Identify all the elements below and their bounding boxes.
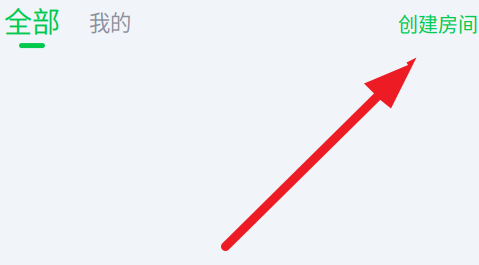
staticText: 创建房间 [398,9,478,38]
staticText: 全部 [4,0,60,40]
button[interactable]: 我的 [85,6,135,37]
button[interactable]: 全部 [0,0,64,48]
button[interactable]: 创建房间 [398,9,478,38]
staticText: 我的 [89,6,131,37]
